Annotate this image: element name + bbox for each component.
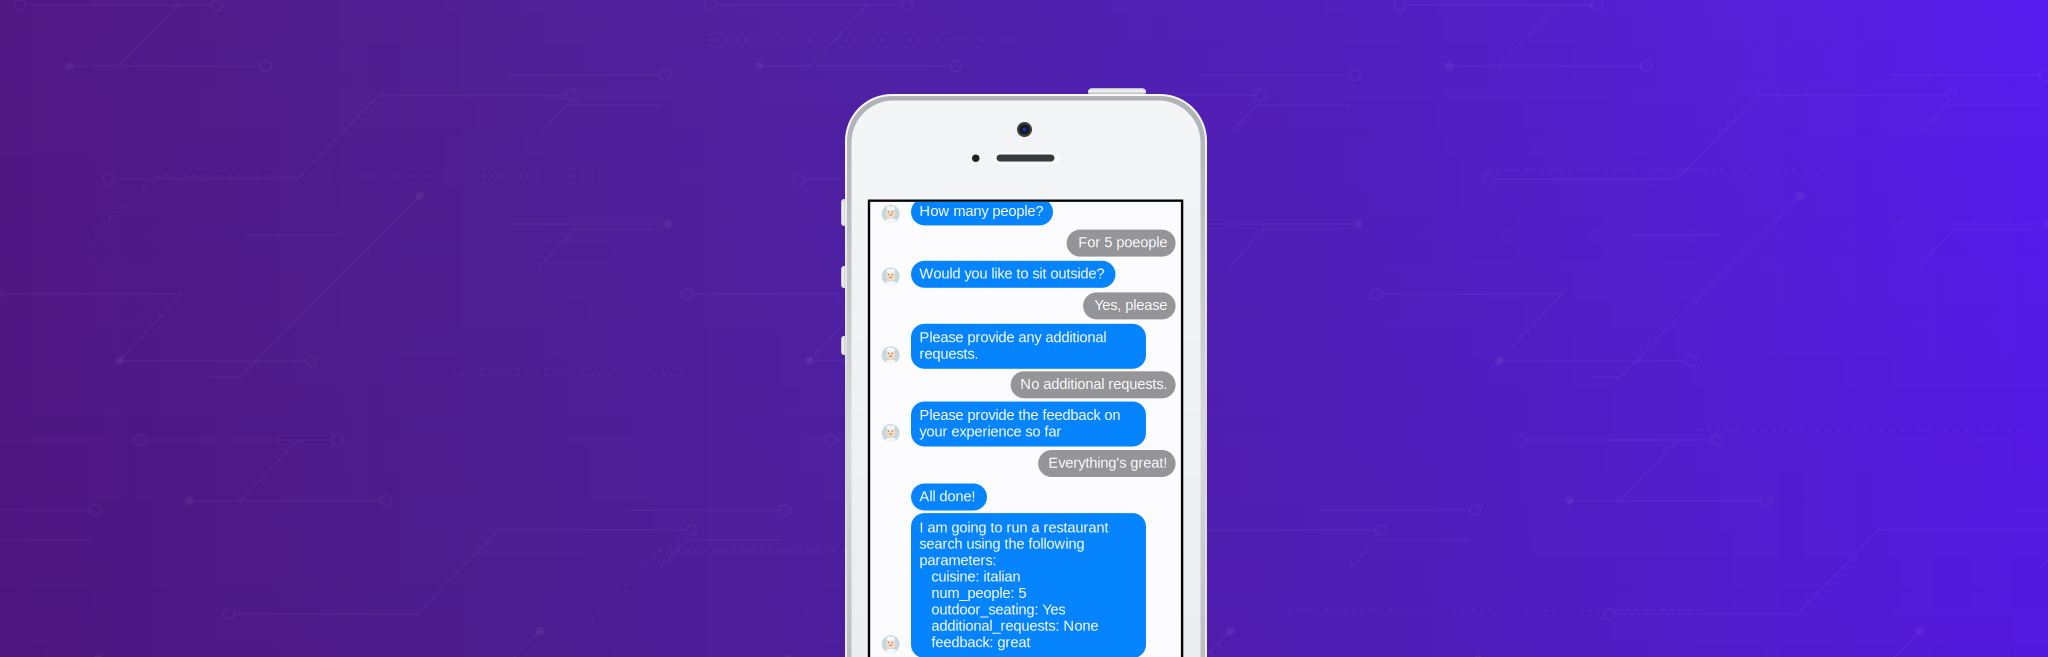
- staticText: Everything's great!: [1048, 454, 1167, 471]
- staticText: feedback: great: [919, 634, 1030, 650]
- staticText: requests.: [919, 345, 978, 362]
- staticText: num_people: 5: [919, 585, 1026, 601]
- staticText: search using the following: [919, 535, 1084, 552]
- staticText: No additional requests.: [1020, 376, 1167, 392]
- staticText: How many people?: [919, 203, 1043, 219]
- staticText: additional_requests: None: [919, 617, 1098, 634]
- staticText: your experience so far: [919, 423, 1061, 439]
- staticText: I am going to run a restaurant: [919, 519, 1108, 535]
- staticText: For 5 poeople: [1078, 234, 1167, 250]
- staticText: Would you like to sit outside?: [919, 265, 1104, 282]
- staticText: Yes, please: [1094, 297, 1167, 313]
- staticText: Please provide any additional: [919, 329, 1106, 345]
- staticText: Please provide the feedback on: [919, 407, 1120, 423]
- staticText: parameters:: [919, 552, 996, 568]
- staticText: cuisine: italian: [919, 568, 1020, 585]
- staticText: outdoor_seating: Yes: [919, 601, 1065, 617]
- staticText: All done!: [919, 488, 975, 504]
